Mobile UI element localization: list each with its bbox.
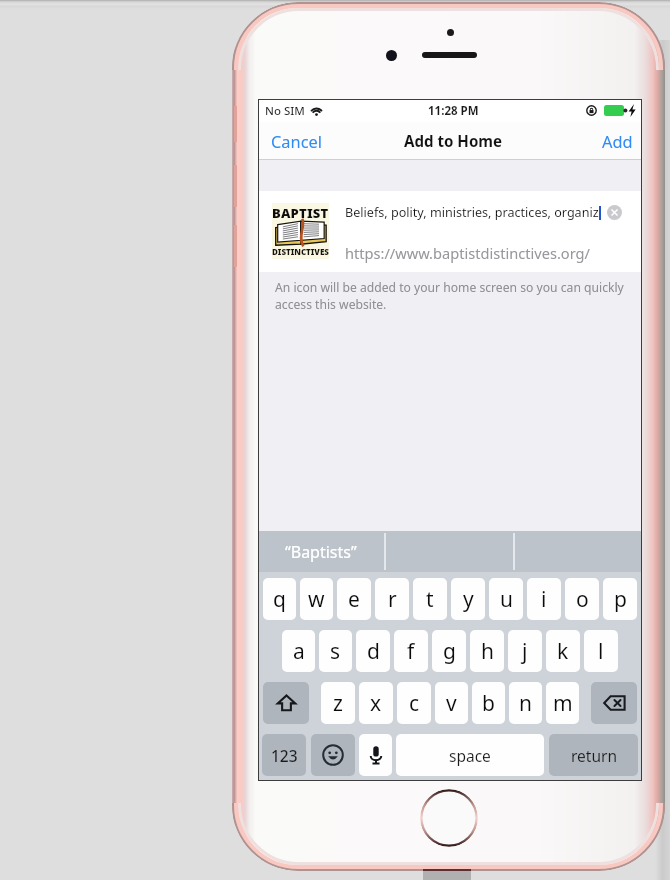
button[interactable]: n xyxy=(509,682,542,724)
button[interactable]: a xyxy=(282,630,315,672)
button[interactable]: j xyxy=(508,630,542,672)
staticText: 11:28 PM xyxy=(428,103,479,119)
button[interactable]: l xyxy=(584,630,618,672)
staticText: y xyxy=(463,585,474,614)
button[interactable]: y xyxy=(451,578,485,620)
staticText: An icon will be added to your home scree… xyxy=(275,279,624,313)
staticText: t xyxy=(426,585,434,614)
button[interactable]: s xyxy=(319,630,352,672)
staticText: x xyxy=(370,689,382,718)
button[interactable]: 123 xyxy=(262,734,306,776)
button[interactable]: q xyxy=(263,578,296,620)
button[interactable]: Cancel xyxy=(266,124,328,158)
staticText: p xyxy=(614,585,627,614)
staticText: No SIM xyxy=(265,103,305,119)
staticText: Add xyxy=(602,130,633,152)
staticText: q xyxy=(273,585,286,614)
staticText: d xyxy=(367,637,380,666)
staticText: w xyxy=(308,585,325,614)
button[interactable]: t xyxy=(413,578,447,620)
button[interactable]: Shift xyxy=(263,682,309,724)
button[interactable]: space xyxy=(396,734,544,776)
button[interactable]: k xyxy=(546,630,580,672)
button[interactable]: v xyxy=(435,682,468,724)
staticText: Cancel xyxy=(271,130,323,152)
button[interactable]: u xyxy=(489,578,523,620)
button[interactable]: “Baptists” xyxy=(258,531,384,572)
button[interactable]: c xyxy=(397,682,431,724)
staticText: Beliefs, polity, ministries, practices, … xyxy=(345,204,599,221)
button[interactable]: x xyxy=(359,682,393,724)
staticText: https://www.baptistdistinctives.org/ xyxy=(345,243,590,263)
button[interactable]: r xyxy=(375,578,409,620)
button[interactable] xyxy=(515,531,642,572)
button[interactable]: d xyxy=(356,630,390,672)
button[interactable]: o xyxy=(565,578,599,620)
staticText: u xyxy=(500,585,513,614)
staticText: l xyxy=(598,637,604,666)
button[interactable]: w xyxy=(300,578,333,620)
staticText: e xyxy=(348,585,360,614)
staticText: o xyxy=(576,585,589,614)
button[interactable]: Dictation xyxy=(359,734,392,776)
button[interactable]: return xyxy=(549,734,638,776)
staticText: return xyxy=(571,745,617,766)
staticText: m xyxy=(553,689,573,718)
staticText: space xyxy=(449,745,491,766)
staticText: DISTINCTIVES xyxy=(272,246,329,257)
staticText: j xyxy=(522,637,528,666)
staticText: h xyxy=(481,637,494,666)
staticText: “Baptists” xyxy=(285,541,357,563)
staticText: 123 xyxy=(271,745,298,766)
button[interactable]: g xyxy=(432,630,466,672)
other: Emoji xyxy=(322,744,344,766)
staticText: r xyxy=(388,585,397,614)
staticText: n xyxy=(519,689,532,718)
staticText: z xyxy=(333,689,343,718)
staticText: Add to Home xyxy=(404,131,503,152)
button[interactable]: i xyxy=(527,578,561,620)
button[interactable]: m xyxy=(546,682,579,724)
staticText: v xyxy=(446,689,457,718)
staticText: s xyxy=(330,637,341,666)
other: Backspace xyxy=(603,695,626,711)
button[interactable]: Backspace xyxy=(591,682,637,724)
staticText: c xyxy=(409,689,420,718)
staticText: BAPTIST xyxy=(272,204,329,222)
button[interactable]: h xyxy=(470,630,504,672)
button[interactable]: Emoji xyxy=(311,734,355,776)
button[interactable]: p xyxy=(603,578,637,620)
button[interactable]: Home xyxy=(420,789,478,847)
staticText: a xyxy=(293,637,305,666)
staticText: i xyxy=(541,585,547,614)
button[interactable]: z xyxy=(321,682,355,724)
staticText: f xyxy=(407,637,415,666)
button[interactable]: b xyxy=(472,682,505,724)
staticText: g xyxy=(443,637,456,666)
button[interactable]: e xyxy=(337,578,371,620)
other: Shift xyxy=(277,694,296,712)
staticText: b xyxy=(482,689,495,718)
staticText: k xyxy=(557,637,569,666)
button[interactable]: f xyxy=(394,630,428,672)
button[interactable]: Add xyxy=(597,124,634,158)
